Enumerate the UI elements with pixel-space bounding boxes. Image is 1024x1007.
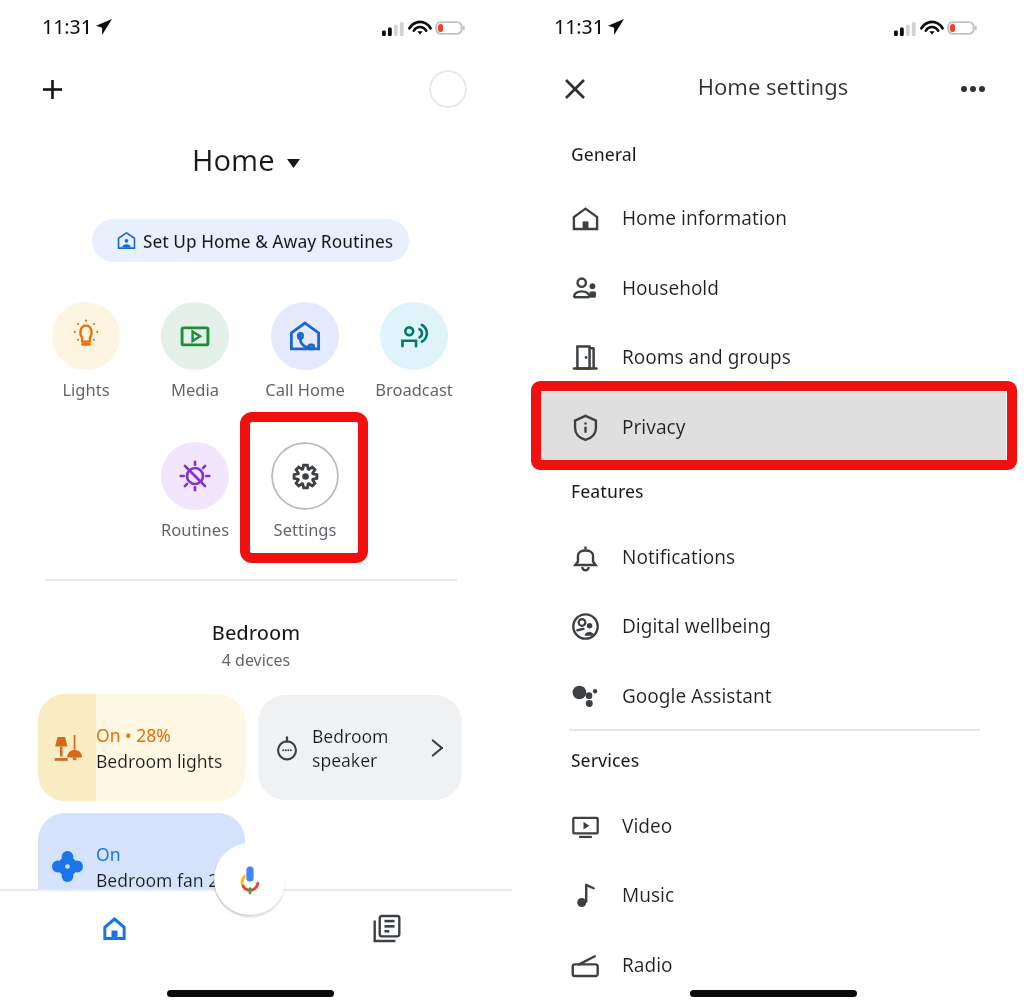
button[interactable]: Home	[91, 905, 137, 951]
staticText: Broadcast	[359, 378, 469, 400]
button[interactable]: Settings	[250, 442, 360, 552]
staticText: Bedroom	[312, 724, 389, 748]
button[interactable]: Routines	[140, 442, 250, 552]
staticText: Home settings	[517, 71, 1024, 101]
staticText: Home	[192, 140, 275, 179]
button[interactable]: Feed	[364, 905, 410, 951]
button[interactable]: Close	[557, 71, 593, 107]
staticText: Media	[140, 378, 250, 400]
button[interactable]: Google Assistant	[214, 843, 286, 915]
button[interactable]: Home information	[537, 188, 1015, 248]
button[interactable]: Digital wellbeing	[537, 596, 1015, 656]
button[interactable]: Media	[140, 302, 250, 412]
staticText: General	[571, 142, 637, 166]
button[interactable]: Bedroom	[258, 695, 462, 800]
staticText: Services	[571, 748, 640, 772]
button[interactable]: Call Home	[250, 302, 360, 412]
staticText: 11:31	[42, 13, 92, 40]
button[interactable]: Set Up Home & Away Routines	[92, 219, 409, 262]
button[interactable]: Lights	[31, 302, 141, 412]
button[interactable]: Account	[429, 70, 467, 108]
staticText: Music	[622, 882, 675, 908]
staticText: Privacy	[622, 414, 686, 440]
staticText: 11:31	[554, 13, 604, 40]
staticText: Radio	[622, 952, 673, 978]
staticText: Bedroom	[0, 619, 512, 646]
staticText: Notifications	[622, 544, 736, 570]
button[interactable]: On • 28%	[38, 694, 245, 801]
staticText: Home information	[622, 205, 787, 231]
staticText: Bedroom fan 2	[96, 868, 219, 892]
staticText: speaker	[312, 748, 378, 772]
staticText: Bedroom lights	[96, 749, 223, 773]
button[interactable]: Radio	[537, 935, 1015, 995]
staticText: Household	[622, 275, 719, 301]
staticText: Rooms and groups	[622, 344, 791, 370]
staticText: Settings	[250, 518, 360, 540]
staticText: Google Assistant	[622, 683, 772, 709]
button[interactable]: Video	[537, 796, 1015, 856]
button[interactable]: Privacy	[537, 397, 1015, 457]
button[interactable]: Household	[537, 258, 1015, 318]
button[interactable]: Music	[537, 865, 1015, 925]
button[interactable]: On	[38, 813, 245, 920]
staticText: Features	[571, 479, 644, 503]
staticText: Digital wellbeing	[622, 613, 771, 639]
staticText: On • 28%	[96, 723, 171, 747]
button[interactable]: Add	[32, 69, 72, 109]
staticText: Routines	[140, 518, 250, 540]
button[interactable]: More options	[955, 71, 991, 107]
button[interactable]: Home	[0, 140, 502, 179]
staticText: Video	[622, 813, 673, 839]
button[interactable]: Google Assistant	[537, 666, 1015, 726]
button[interactable]: Notifications	[537, 527, 1015, 587]
staticText: On	[96, 842, 121, 866]
staticText: Set Up Home & Away Routines	[143, 230, 394, 253]
button[interactable]: Rooms and groups	[537, 327, 1015, 387]
button[interactable]: Broadcast	[359, 302, 469, 412]
staticText: Lights	[31, 378, 141, 400]
staticText: Call Home	[250, 378, 360, 400]
staticText: 4 devices	[0, 649, 512, 671]
